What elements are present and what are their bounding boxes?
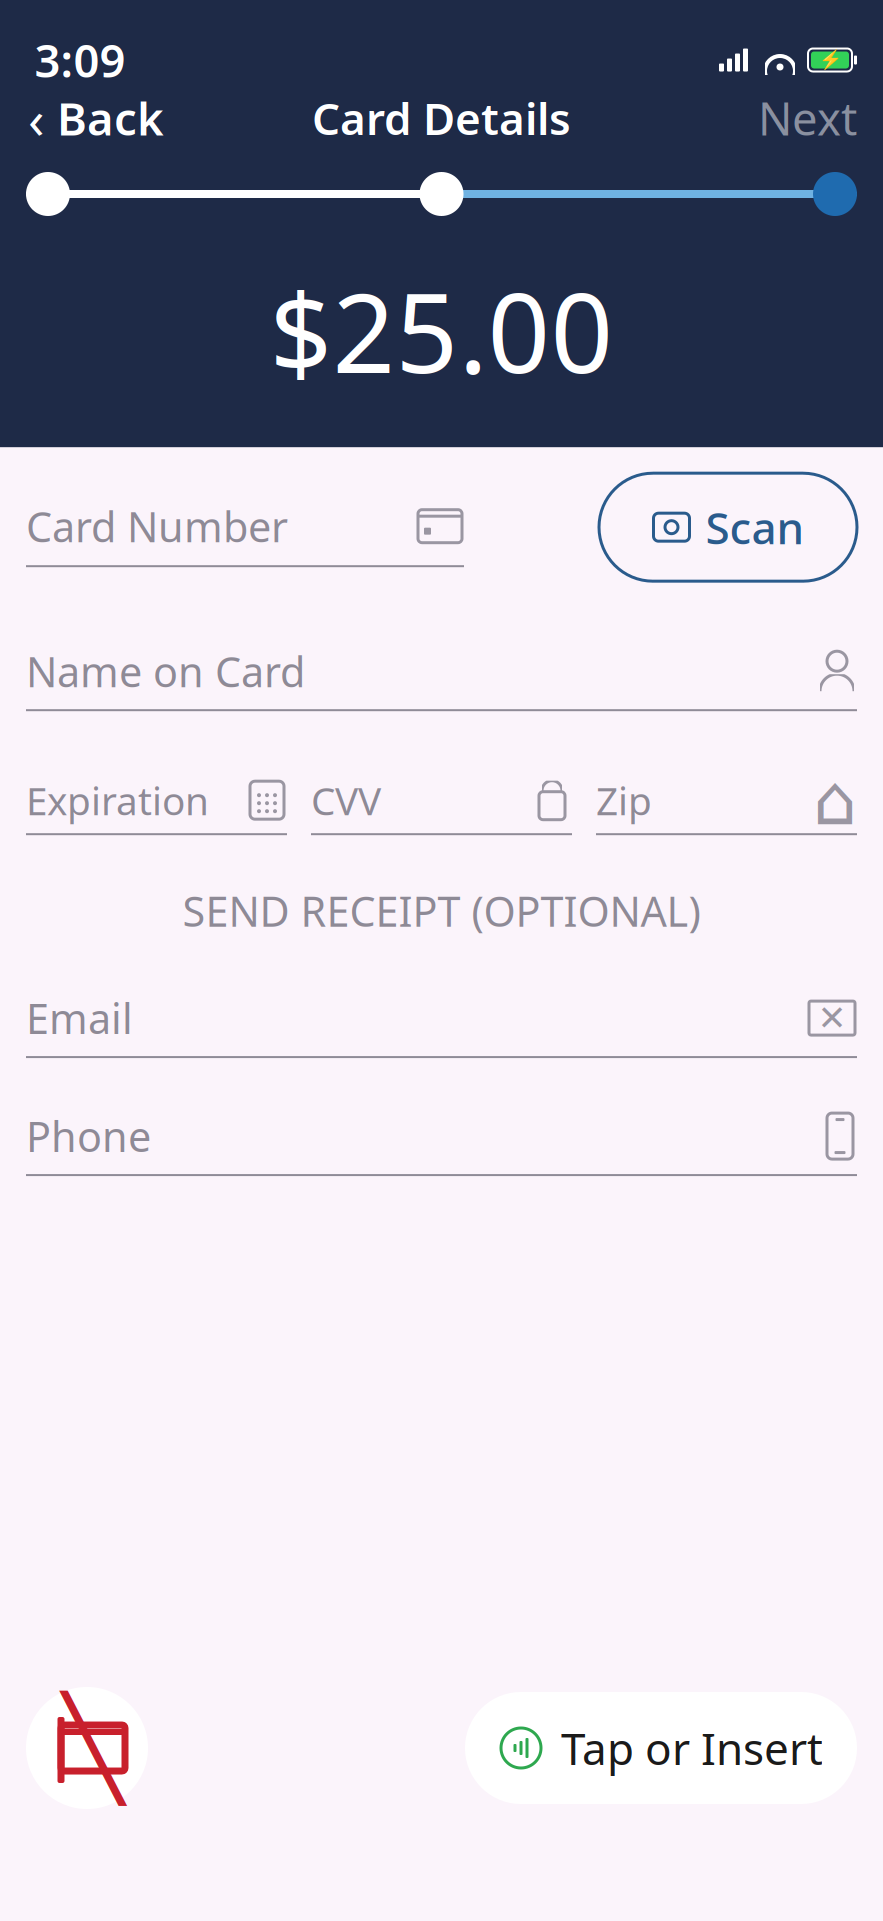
staticText: ⌂: [813, 761, 857, 839]
staticText: SEND RECEIPT (OPTIONAL): [182, 883, 700, 938]
staticText: Name on Card: [26, 644, 305, 699]
button[interactable]: Scan: [599, 473, 857, 581]
staticText: Email: [26, 991, 133, 1045]
staticText: ╲: [63, 1692, 122, 1804]
button[interactable]: Tap or Insert: [465, 1692, 857, 1804]
staticText: Card Details: [312, 89, 571, 147]
staticText: Back: [57, 88, 164, 148]
staticText: Zip: [596, 774, 652, 826]
staticText: Scan: [705, 498, 804, 556]
staticText: Tap or Insert: [561, 1719, 823, 1777]
staticText: Expiration: [26, 774, 209, 826]
staticText: Next: [758, 88, 857, 148]
button[interactable]: Next: [732, 87, 883, 149]
staticText: $25.00: [269, 258, 613, 403]
button[interactable]: ‹: [0, 87, 192, 149]
staticText: Card Number: [26, 499, 288, 554]
staticText: Phone: [26, 1109, 151, 1163]
staticText: ⚡: [818, 49, 841, 71]
staticText: ‹: [28, 83, 45, 153]
button[interactable]: Void check: [26, 1687, 148, 1809]
staticText: 3:09: [34, 30, 125, 90]
staticText: ✕: [817, 998, 846, 1038]
staticText: CVV: [311, 774, 381, 826]
